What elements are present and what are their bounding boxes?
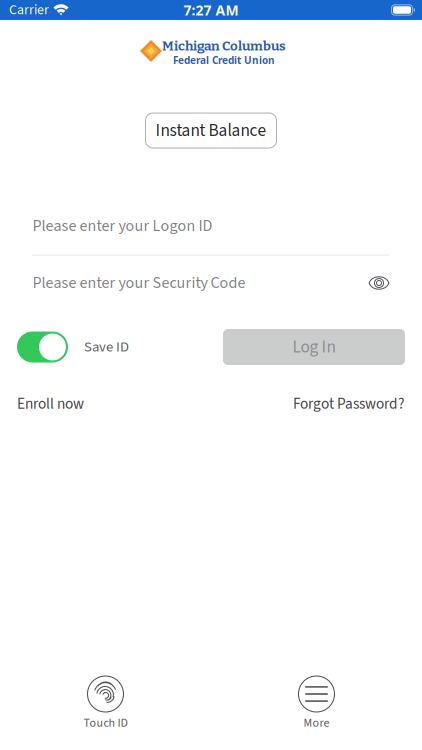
staticText: Please enter your Logon ID [32, 215, 212, 237]
staticText: Please enter your Security Code [32, 272, 245, 294]
button[interactable]: Touch ID [55, 676, 155, 729]
staticText: Carrier [9, 0, 49, 20]
staticText: Log In [292, 335, 335, 359]
staticText: Touch ID [83, 714, 127, 732]
button[interactable]: Log In [223, 329, 405, 365]
button[interactable]: Forgot Password? [293, 393, 405, 415]
staticText: Forgot Password? [293, 393, 405, 415]
staticText: 7:27 AM [183, 0, 238, 20]
staticText: Enroll now [17, 393, 84, 415]
staticText: More [303, 714, 329, 732]
button[interactable]: Save ID [17, 329, 129, 365]
button[interactable]: Show security code [368, 276, 389, 290]
button[interactable]: More [266, 676, 366, 729]
staticText: Instant Balance [155, 118, 266, 143]
button[interactable]: Instant Balance [145, 113, 276, 148]
staticText: Save ID [84, 337, 129, 357]
staticText: Michigan Columbus [162, 38, 286, 54]
staticText: Federal Credit Union [173, 53, 275, 67]
button[interactable]: Enroll now [17, 393, 84, 415]
